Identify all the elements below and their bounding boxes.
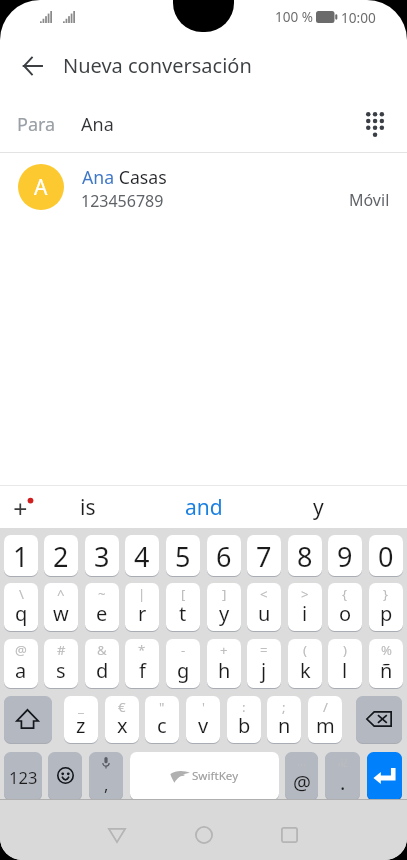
staticText: 7 — [256, 538, 272, 575]
button[interactable]: Voice input — [89, 752, 123, 800]
button[interactable]: Shift — [4, 696, 52, 743]
staticText: # — [57, 641, 66, 659]
staticText: 1 — [13, 538, 29, 575]
staticText: a — [15, 657, 27, 684]
button[interactable]: * — [125, 639, 159, 688]
button[interactable]: ] — [207, 583, 241, 631]
button[interactable]: 4 — [125, 535, 159, 576]
staticText: = — [260, 641, 268, 659]
button[interactable]: - — [166, 639, 200, 688]
staticText: [ — [181, 585, 186, 603]
other: Voice input — [102, 757, 110, 769]
button[interactable]: = — [247, 639, 281, 688]
button[interactable]: Add — [6, 490, 38, 526]
staticText: , — [104, 773, 109, 795]
button[interactable]: 123 — [4, 752, 42, 800]
button[interactable]: \ — [4, 583, 38, 631]
button[interactable]: Back — [10, 44, 54, 88]
button[interactable]: Home — [181, 812, 226, 858]
button[interactable]: 9 — [328, 535, 362, 576]
staticText: e — [96, 600, 108, 627]
button[interactable]: " — [145, 696, 179, 743]
button[interactable]: 8 — [288, 535, 322, 576]
staticText: ~ — [98, 585, 106, 603]
button[interactable]: ,¡¿ — [325, 752, 360, 800]
staticText: ^ — [57, 585, 65, 603]
button[interactable]: 6 — [207, 535, 241, 576]
staticText: t — [179, 600, 187, 627]
button[interactable]: < — [247, 583, 281, 631]
button[interactable]: _ — [64, 696, 98, 743]
button[interactable]: 5 — [166, 535, 200, 576]
staticText: c — [157, 712, 167, 739]
other: Enter — [373, 766, 396, 786]
button[interactable]: ^ — [44, 583, 78, 631]
staticText: ; — [282, 698, 286, 716]
button[interactable]: @ — [4, 639, 38, 688]
button[interactable]: Emoji — [48, 752, 82, 800]
staticText: x — [117, 712, 128, 739]
button[interactable]: } — [369, 583, 403, 631]
staticText: < — [260, 585, 268, 603]
button[interactable]: is — [33, 487, 143, 527]
button[interactable]: / — [308, 696, 342, 743]
staticText: A — [34, 173, 48, 202]
staticText: h — [218, 657, 231, 684]
button[interactable]: & — [85, 639, 119, 688]
button[interactable]: ) — [328, 639, 362, 688]
button[interactable]: Backspace — [356, 696, 402, 743]
staticText: ñ — [380, 657, 393, 684]
button[interactable]: | — [125, 583, 159, 631]
button[interactable]: : — [227, 696, 261, 743]
staticText: o — [339, 600, 352, 627]
button[interactable]: Back — [94, 812, 139, 858]
button[interactable]: ' — [186, 696, 220, 743]
staticText: Móvil — [349, 189, 390, 211]
staticText: n — [278, 712, 291, 739]
button[interactable]: y — [263, 487, 373, 527]
button[interactable]: € — [105, 696, 139, 743]
staticText: y — [219, 600, 230, 627]
staticText: z — [76, 712, 86, 739]
other: Emoji — [57, 767, 74, 784]
staticText: b — [238, 712, 251, 739]
button[interactable]: and — [149, 487, 259, 527]
staticText: SwiftKey — [192, 768, 239, 784]
button[interactable]: 0 — [369, 535, 403, 576]
staticText: 8 — [297, 538, 313, 575]
button[interactable]: Dialpad — [356, 105, 394, 143]
button[interactable]: Enter — [367, 752, 402, 800]
button[interactable]: Recents — [267, 812, 312, 858]
button[interactable]: # — [44, 639, 78, 688]
button[interactable]: 1 — [4, 535, 38, 576]
staticText: € — [118, 698, 126, 716]
button[interactable] — [0, 152, 407, 220]
staticText: u — [258, 600, 271, 627]
button[interactable]: ( — [288, 639, 322, 688]
staticText: 9 — [337, 538, 353, 575]
button[interactable]: 2 — [44, 535, 78, 576]
button[interactable]: ... — [285, 752, 318, 800]
button[interactable]: { — [328, 583, 362, 631]
staticText: { — [342, 585, 348, 603]
staticText: 123456789 — [81, 190, 164, 212]
staticText: g — [177, 657, 190, 684]
staticText: 4 — [134, 538, 150, 575]
staticText: \ — [19, 585, 24, 603]
staticText: Nueva conversación — [63, 52, 252, 79]
button[interactable] — [0, 99, 407, 152]
button[interactable]: 3 — [85, 535, 119, 576]
button[interactable]: > — [288, 583, 322, 631]
button[interactable]: [ — [166, 583, 200, 631]
button[interactable]: ~ — [85, 583, 119, 631]
staticText: ) — [343, 641, 347, 659]
button[interactable]: % — [369, 639, 403, 688]
staticText: " — [159, 698, 165, 716]
staticText: % — [381, 641, 392, 659]
staticText: y — [313, 493, 324, 522]
button[interactable]: ; — [267, 696, 301, 743]
staticText: Ana — [81, 112, 114, 137]
button[interactable]: 7 — [247, 535, 281, 576]
button[interactable]: + — [207, 639, 241, 688]
button[interactable]: SwiftKey — [130, 752, 279, 800]
